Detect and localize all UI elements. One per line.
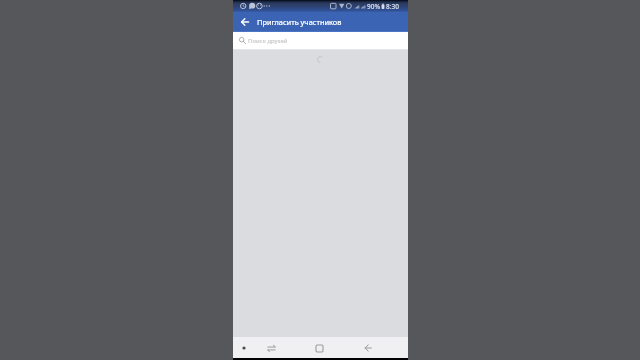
button[interactable]: Назад	[359, 339, 377, 357]
button[interactable]: Назад	[237, 14, 253, 30]
button[interactable]: Поиск друзей	[233, 32, 408, 49]
staticText: 90%	[367, 2, 380, 11]
button[interactable]: Меню	[237, 341, 251, 355]
staticText: Поиск друзей	[248, 37, 288, 45]
button[interactable]: Переключить приложение	[262, 339, 280, 357]
button[interactable]: Последние приложения	[310, 339, 328, 357]
staticText: Пригласить участников	[257, 17, 342, 27]
staticText: 8:30	[386, 2, 399, 11]
